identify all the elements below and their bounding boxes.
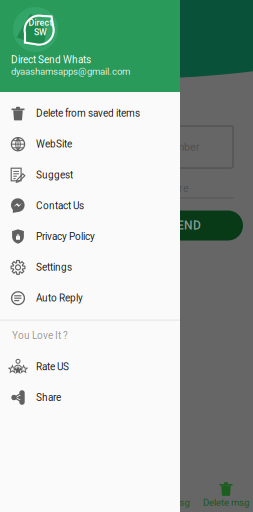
button[interactable]: Send msg	[140, 480, 197, 512]
button[interactable]: Share	[0, 382, 180, 413]
button[interactable]: Privacy Policy	[0, 221, 180, 252]
staticText: Privacy Policy	[36, 231, 95, 242]
staticText: Auto Reply	[36, 292, 83, 304]
staticText: Delete from saved items	[36, 107, 140, 119]
button[interactable]: Contact Us	[0, 190, 180, 221]
staticText: Rate US	[36, 361, 69, 373]
staticText: Contact Us	[36, 200, 84, 212]
staticText: dyaashamsapps@gmail.com	[11, 66, 130, 77]
staticText: Direct Send Whats	[11, 54, 91, 66]
button[interactable]: WebSite	[0, 129, 180, 160]
staticText: Enter Number	[133, 141, 200, 153]
staticText: Settings	[36, 261, 72, 273]
button[interactable]: Delete msg	[197, 480, 253, 512]
staticText: WebSite	[36, 138, 72, 150]
button[interactable]: Rate US	[0, 351, 180, 382]
button[interactable]: Auto Reply	[0, 283, 180, 314]
staticText: Send msg	[148, 497, 189, 508]
button[interactable]: Delete from saved items	[0, 98, 180, 129]
staticText: Type your message here	[69, 182, 189, 194]
staticText: Direct	[28, 18, 52, 28]
staticText: SW	[34, 27, 47, 37]
button[interactable]: Suggest	[0, 160, 180, 190]
staticText: Suggest	[36, 169, 73, 181]
staticText: SEND	[170, 218, 201, 233]
button[interactable]: SEND	[21, 210, 243, 240]
staticText: Delete msg	[203, 497, 249, 508]
button[interactable]: Settings	[0, 252, 180, 283]
staticText: You Love It ?	[12, 330, 68, 341]
staticText: Share	[36, 392, 61, 403]
